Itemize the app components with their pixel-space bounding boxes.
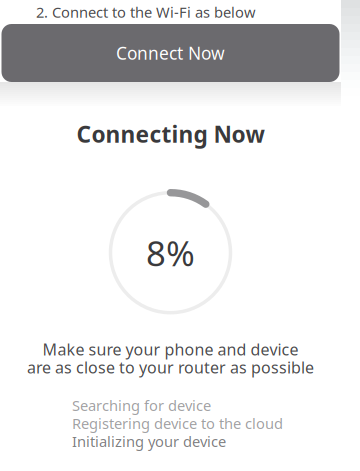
staticText: 2. Connect to the Wi-Fi as below <box>36 2 256 22</box>
staticText: Connecting Now <box>76 119 264 149</box>
button[interactable]: Connect Now <box>1 24 339 82</box>
staticText: Initializing your device <box>72 432 226 451</box>
staticText: Searching for device <box>72 396 211 415</box>
staticText: 8% <box>146 230 195 276</box>
staticText: Make sure your phone and device <box>42 339 298 360</box>
staticText: Registering device to the cloud <box>72 414 283 433</box>
staticText: are as close to your router as possible <box>27 357 314 378</box>
staticText: Connect Now <box>116 41 225 64</box>
